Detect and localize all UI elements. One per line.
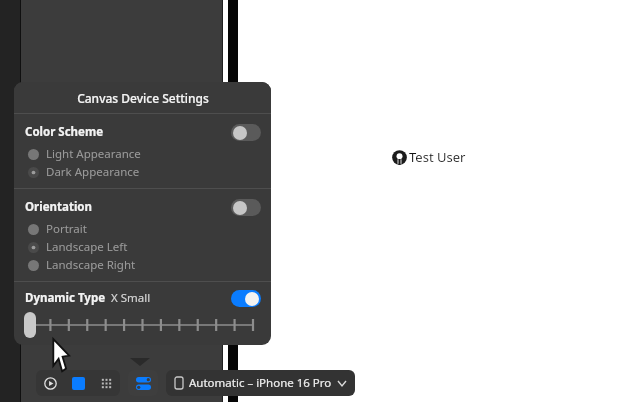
button[interactable]: Color Scheme xyxy=(231,124,261,141)
staticText: Dynamic Type xyxy=(25,290,106,306)
button[interactable]: Dynamic Type xyxy=(231,290,261,307)
staticText: Landscape Right xyxy=(46,257,136,273)
staticText: X Small xyxy=(111,290,151,306)
button[interactable]: Dark Appearance xyxy=(14,163,271,181)
button[interactable]: Orientation xyxy=(231,199,261,216)
staticText: Canvas Device Settings xyxy=(77,90,209,106)
staticText: Light Appearance xyxy=(46,146,141,162)
staticText: Landscape Left xyxy=(46,239,128,255)
staticText: Test User xyxy=(409,148,466,166)
button[interactable]: Orientation xyxy=(14,194,271,220)
button[interactable]: Landscape Left xyxy=(14,238,271,256)
staticText: Orientation xyxy=(25,199,92,215)
button[interactable]: Automatic – iPhone 16 Pro xyxy=(166,370,355,396)
button[interactable]: Color Scheme xyxy=(14,119,271,145)
button[interactable]: Dynamic Type xyxy=(14,285,271,311)
button[interactable]: Selection tool xyxy=(64,370,92,396)
button[interactable]: Live preview xyxy=(36,370,64,396)
button[interactable]: Dynamic Type size xyxy=(14,311,271,339)
staticText: Automatic – iPhone 16 Pro xyxy=(189,375,332,391)
button[interactable]: Variants grid xyxy=(92,370,120,396)
button[interactable]: Landscape Right xyxy=(14,256,271,274)
staticText: Portrait xyxy=(46,221,87,237)
button[interactable]: Light Appearance xyxy=(14,145,271,163)
staticText: Color Scheme xyxy=(25,124,104,140)
button[interactable]: Portrait xyxy=(14,220,271,238)
button[interactable]: Device settings xyxy=(128,370,158,396)
staticText: Dark Appearance xyxy=(46,164,140,180)
